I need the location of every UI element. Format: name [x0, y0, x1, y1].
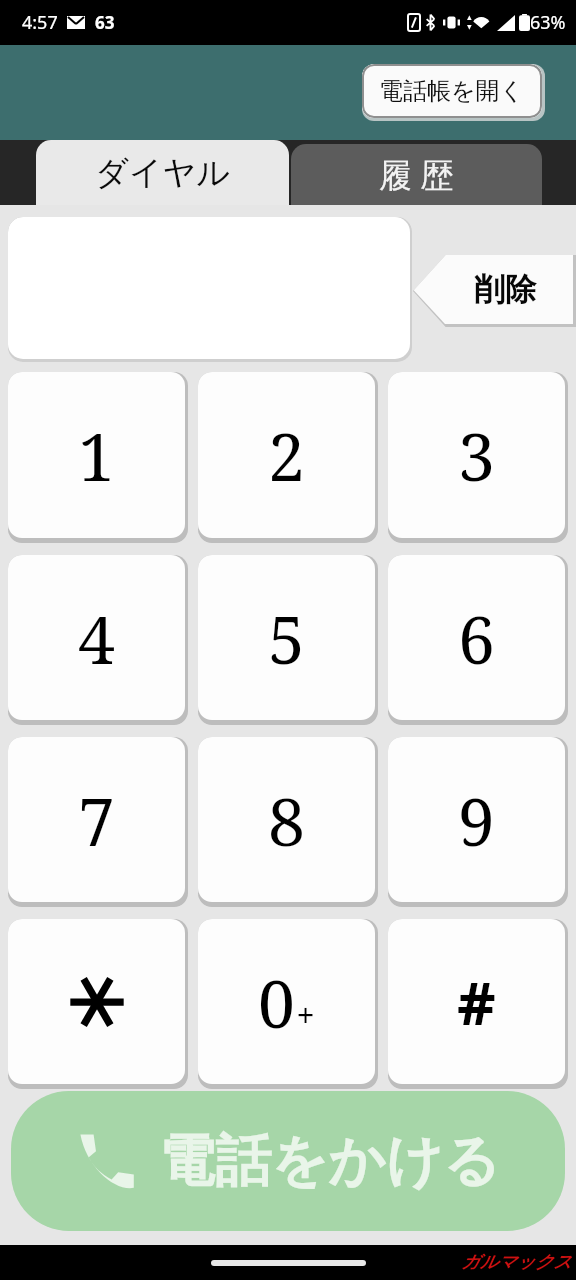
button[interactable]: 履 歴	[291, 144, 542, 205]
staticText: 7	[78, 775, 115, 865]
button[interactable]: #	[388, 919, 565, 1084]
staticText: 4:57	[22, 10, 58, 35]
button[interactable]: ダイヤル	[36, 140, 289, 205]
staticText: +	[297, 994, 315, 1035]
button[interactable]: 5	[198, 555, 375, 720]
staticText: 9	[458, 775, 495, 865]
staticText: 削除	[474, 270, 536, 309]
staticText: 電話帳を開く	[379, 76, 525, 106]
staticText: 63%	[530, 10, 566, 35]
staticText: 3	[458, 410, 495, 500]
staticText: ガルマックス	[461, 1251, 572, 1274]
staticText: 6	[458, 593, 495, 683]
button[interactable]: 9	[388, 737, 565, 902]
button[interactable]: 2	[198, 372, 375, 538]
button[interactable]: 0	[198, 919, 375, 1084]
button[interactable]	[8, 919, 185, 1084]
staticText: ダイヤル	[95, 152, 231, 194]
button[interactable]: 1	[8, 372, 185, 538]
staticText: 8	[268, 775, 305, 865]
button[interactable]: 4	[8, 555, 185, 720]
staticText: 63	[95, 11, 115, 34]
staticText: 2	[268, 410, 305, 500]
staticText: 電話をかける	[159, 1126, 501, 1197]
staticText: 履 歴	[379, 152, 454, 197]
staticText: #	[457, 961, 496, 1043]
staticText: 0	[258, 957, 295, 1047]
staticText: 1	[78, 410, 115, 500]
button[interactable]: 3	[388, 372, 565, 538]
button[interactable]: 6	[388, 555, 565, 720]
button[interactable]: 電話帳を開く	[362, 64, 542, 118]
button[interactable]: 8	[198, 737, 375, 902]
staticText: 4	[78, 593, 115, 683]
button[interactable]: 7	[8, 737, 185, 902]
staticText: 5	[268, 593, 305, 683]
button[interactable]: 電話をかける	[11, 1091, 565, 1231]
button[interactable]: 削除	[413, 255, 573, 324]
